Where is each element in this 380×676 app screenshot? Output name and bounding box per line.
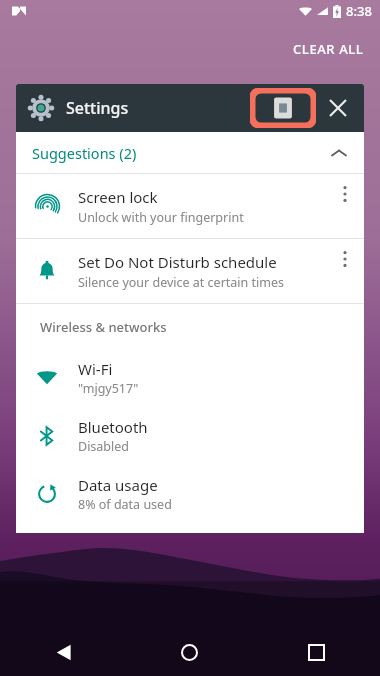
staticText: Wireless & networks xyxy=(40,318,167,336)
button[interactable]: Recent apps xyxy=(253,628,380,676)
staticText: 8:38 xyxy=(346,2,372,20)
staticText: "mjgy517" xyxy=(78,380,139,397)
button[interactable]: Screen lock xyxy=(16,174,364,238)
staticText: Settings xyxy=(66,97,129,119)
button[interactable]: Back xyxy=(0,628,126,676)
button[interactable]: Home xyxy=(126,628,253,676)
staticText: Unlock with your fingerprint xyxy=(78,209,244,226)
staticText: 8% of data used xyxy=(78,496,172,513)
button[interactable]: Bluetooth xyxy=(16,407,364,465)
button[interactable]: Set Do Not Disturb schedule xyxy=(16,239,364,303)
button[interactable]: Split screen xyxy=(250,88,316,128)
button[interactable]: More options xyxy=(326,239,364,303)
button[interactable]: Data usage xyxy=(16,465,364,523)
staticText: Data usage xyxy=(78,475,158,495)
button[interactable]: Close xyxy=(322,92,354,124)
staticText: Screen lock xyxy=(78,187,158,207)
staticText: Wi-Fi xyxy=(78,359,113,379)
staticText: Disabled xyxy=(78,438,130,455)
button[interactable]: Suggestions (2) xyxy=(16,132,364,173)
button[interactable]: CLEAR ALL xyxy=(289,38,368,60)
staticText: Suggestions (2) xyxy=(32,143,137,163)
staticText: Bluetooth xyxy=(78,417,148,437)
staticText: Set Do Not Disturb schedule xyxy=(78,252,277,272)
staticText: CLEAR ALL xyxy=(293,40,364,58)
button[interactable]: Wi-Fi xyxy=(16,349,364,407)
staticText: Silence your device at certain times xyxy=(78,274,285,291)
button[interactable]: More options xyxy=(326,174,364,238)
